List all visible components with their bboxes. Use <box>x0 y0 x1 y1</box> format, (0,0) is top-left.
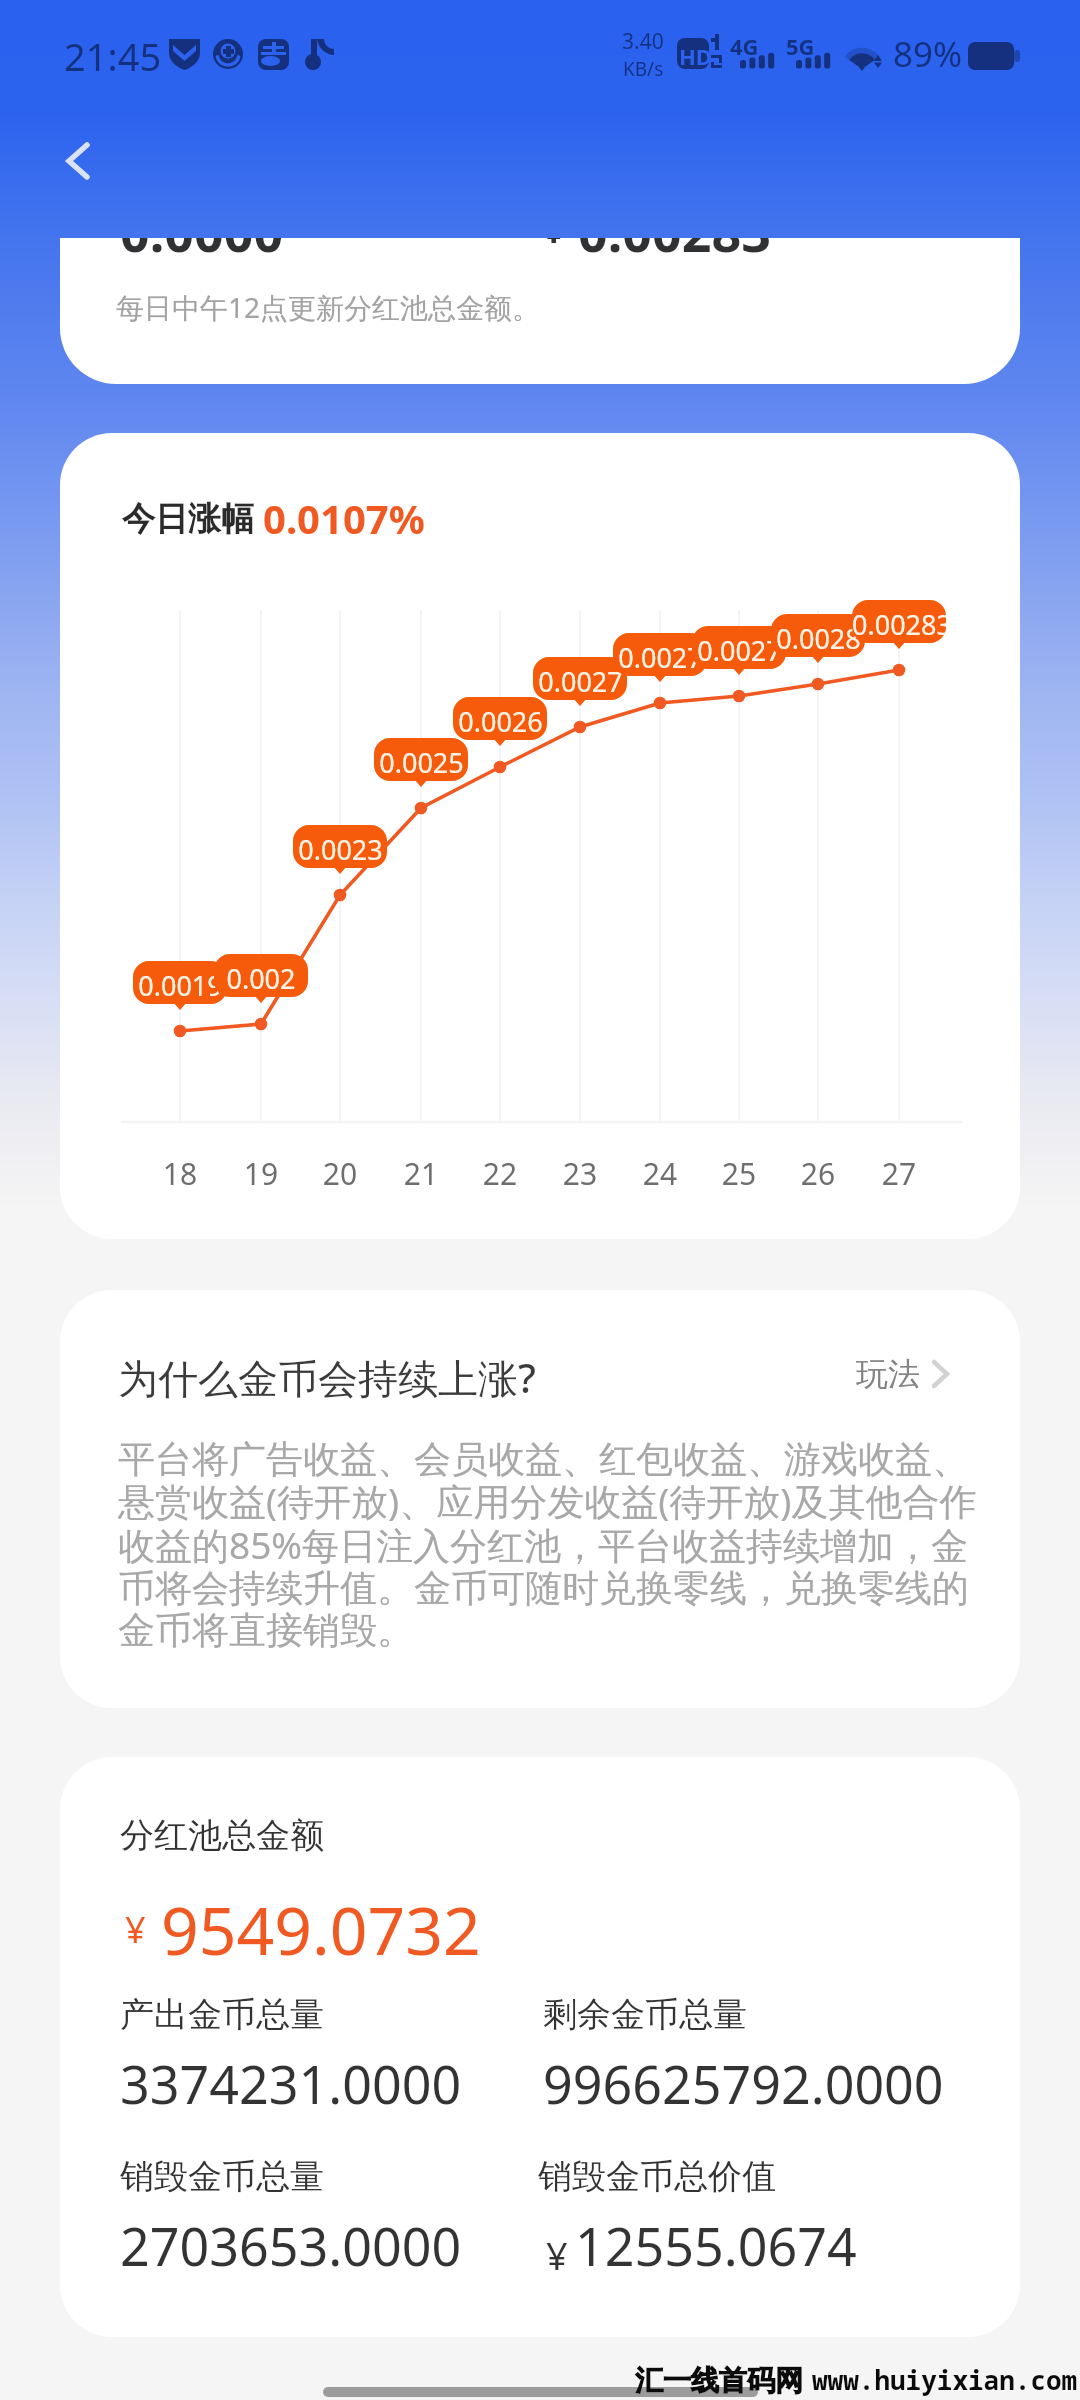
staticText: 0.0023 <box>298 831 383 868</box>
staticText: 销毁金币总量 <box>120 2155 324 2198</box>
staticText: KB/s <box>623 56 664 82</box>
staticText: 每日中午12点更新分红池总金额。 <box>116 288 541 326</box>
staticText: 3374231.0000 <box>120 2048 462 2119</box>
staticText: 0.0028 <box>776 620 861 657</box>
staticText: 9549.0732 <box>161 1884 481 1974</box>
staticText: 0.00283 <box>852 606 946 643</box>
staticText: 24 <box>610 1153 710 1194</box>
staticText: 20 <box>290 1153 390 1194</box>
staticText: 分红池总金额 <box>120 1814 324 1857</box>
staticText: 汇一线首码网 <box>635 2363 803 2398</box>
staticText: HD <box>679 41 712 71</box>
staticText: 27 <box>849 1153 949 1194</box>
staticText: 89% <box>893 30 963 78</box>
staticText: 玩法 <box>856 1354 920 1394</box>
staticText: 产出金币总量 <box>120 1993 324 2036</box>
staticText: ¥ <box>544 238 564 253</box>
button[interactable]: 玩法 <box>856 1354 950 1394</box>
staticText: 销毁金币总价值 <box>538 2155 776 2198</box>
staticText: 平台将广告收益、会员收益、红包收益、游戏收益、悬赏收益(待开放)、应用分发收益(… <box>118 1436 980 1654</box>
staticText: 0.0025 <box>379 744 464 781</box>
staticText: ¥ <box>546 2229 568 2281</box>
staticText: 4G <box>730 31 759 61</box>
staticText: 21 <box>371 1153 471 1194</box>
staticText: 18 <box>130 1153 230 1194</box>
staticText: 26 <box>768 1153 868 1194</box>
staticText: 996625792.0000 <box>543 2048 944 2119</box>
staticText: 0.0019 <box>138 967 223 1004</box>
staticText: 0.0000 <box>120 238 284 267</box>
staticText: 25 <box>689 1153 789 1194</box>
staticText: 2703653.0000 <box>120 2210 462 2281</box>
staticText: 0.002 <box>226 960 296 997</box>
staticText: 为什么金币会持续上涨? <box>118 1350 536 1405</box>
staticText: 3.40 <box>622 27 664 56</box>
staticText: 21:45 <box>64 30 162 82</box>
staticText: 5G <box>786 31 815 61</box>
staticText: 0.0027 <box>697 632 782 669</box>
staticText: 0.0107% <box>263 491 425 545</box>
staticText: 0.0027 <box>618 639 703 676</box>
staticText: ¥ <box>125 1905 146 1954</box>
staticText: 剩余金币总量 <box>543 1993 747 2036</box>
staticText: 23 <box>530 1153 630 1194</box>
staticText: 0.00283 <box>578 238 772 267</box>
staticText: www.huiyixian.com <box>812 2362 1078 2397</box>
staticText: 0.0026 <box>458 703 543 740</box>
staticText: 0.0027 <box>538 663 623 700</box>
button[interactable]: Back <box>40 125 112 197</box>
staticText: 22 <box>450 1153 550 1194</box>
staticText: 12555.0674 <box>575 2210 857 2281</box>
staticText: 19 <box>211 1153 311 1194</box>
staticText: 今日涨幅 <box>122 498 254 540</box>
